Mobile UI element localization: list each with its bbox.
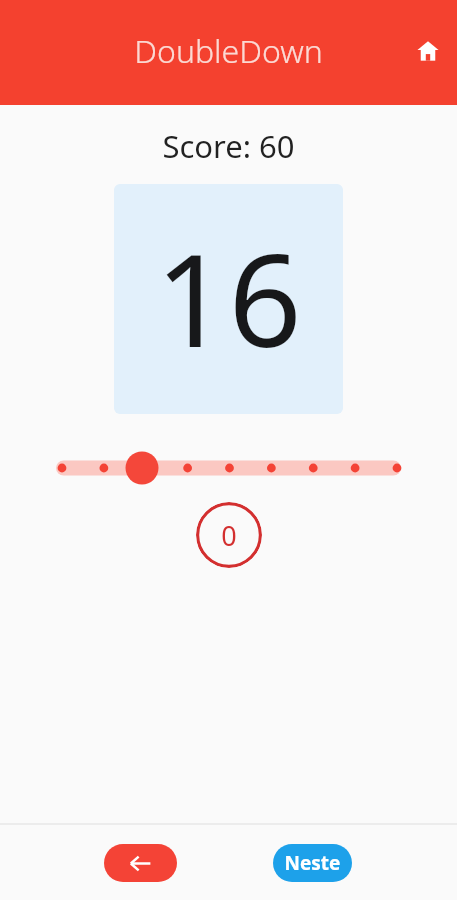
button[interactable]: Neste	[273, 844, 352, 882]
staticText: Score: 60	[0, 125, 457, 167]
staticText: 0	[196, 517, 262, 554]
staticText: 16	[114, 210, 343, 384]
button[interactable]: Value slider	[0, 446, 457, 490]
button[interactable]: 0	[196, 502, 262, 568]
button[interactable]: Back	[104, 844, 177, 882]
staticText: DoubleDown	[0, 29, 457, 73]
button[interactable]: Home	[404, 27, 452, 75]
staticText: Neste	[273, 850, 352, 876]
button[interactable]: 16	[114, 184, 343, 414]
